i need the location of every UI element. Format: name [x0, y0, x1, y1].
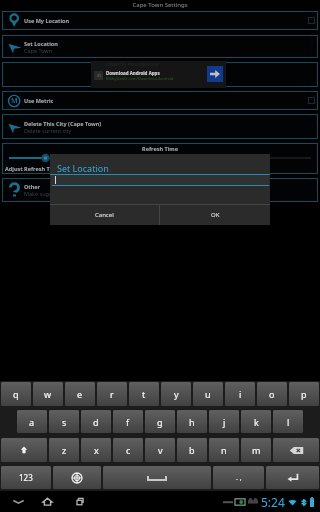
- staticText: n: [221, 444, 227, 456]
- staticText: MobyGenie.com/Download-Android: [106, 76, 174, 81]
- button[interactable]: OK: [160, 205, 270, 225]
- button[interactable]: Recents: [74, 495, 87, 508]
- staticText: M: [11, 96, 18, 106]
- staticText: Refresh Time: [2, 145, 318, 152]
- button[interactable]: Language: [53, 466, 101, 489]
- button[interactable]: h: [177, 410, 207, 433]
- staticText: Delete current city: [24, 127, 72, 134]
- staticText: Cape Town: [24, 47, 53, 54]
- staticText: b: [189, 444, 195, 456]
- button[interactable]: Use My Location: [2, 11, 318, 30]
- staticText: Delete This City (Cape Town): [24, 120, 102, 127]
- staticText: y: [174, 388, 179, 400]
- staticText: t: [142, 388, 146, 400]
- staticText: h: [189, 416, 195, 428]
- staticText: s: [62, 416, 67, 428]
- staticText: a: [29, 416, 35, 428]
- button[interactable]: Set Location: [2, 35, 318, 58]
- button[interactable]: a: [17, 410, 47, 433]
- staticText: z: [62, 444, 67, 456]
- button[interactable]: j: [209, 410, 239, 433]
- button[interactable]: b: [177, 438, 207, 462]
- button[interactable]: k: [241, 410, 271, 433]
- button[interactable]: s: [49, 410, 79, 433]
- staticText: w: [44, 388, 52, 400]
- staticText: Adjust Refresh Time: [5, 165, 60, 172]
- button[interactable]: 123: [1, 466, 51, 489]
- button[interactable]: Delete This City (Cape Town): [2, 114, 318, 139]
- button[interactable]: u: [193, 382, 223, 406]
- button[interactable]: [2, 62, 318, 87]
- button[interactable]: m: [241, 438, 271, 462]
- button[interactable]: d: [81, 410, 111, 433]
- button[interactable]: z: [49, 438, 79, 462]
- button[interactable]: Other: [2, 178, 318, 202]
- staticText: . ,: [236, 473, 242, 483]
- button[interactable]: f: [113, 410, 143, 433]
- button[interactable]: i: [225, 382, 255, 406]
- staticText: q: [13, 388, 19, 400]
- staticText: o: [269, 388, 275, 400]
- staticText: e: [77, 388, 83, 400]
- staticText: i: [239, 388, 242, 400]
- button[interactable]: n: [209, 438, 239, 462]
- staticText: iD: [97, 73, 101, 78]
- staticText: Use My Location: [24, 17, 70, 24]
- staticText: j: [223, 416, 226, 428]
- staticText: p: [301, 388, 307, 400]
- staticText: 5:24: [261, 494, 285, 510]
- button[interactable]: Shift: [1, 438, 47, 462]
- button[interactable]: r: [97, 382, 127, 406]
- staticText: d: [93, 416, 99, 428]
- button[interactable]: x: [81, 438, 111, 462]
- staticText: x: [94, 444, 99, 456]
- staticText: Cancel: [95, 211, 114, 219]
- staticText: r: [110, 388, 114, 400]
- button[interactable]: t: [129, 382, 159, 406]
- staticText: i need my messages now: [106, 61, 159, 67]
- button[interactable]: c: [113, 438, 143, 462]
- staticText: Set Location: [57, 162, 109, 174]
- staticText: 123: [19, 472, 33, 483]
- button[interactable]: w: [33, 382, 63, 406]
- button[interactable]: y: [161, 382, 191, 406]
- button[interactable]: Refresh Time: [2, 143, 318, 174]
- button[interactable]: Cancel: [50, 205, 159, 225]
- button[interactable]: g: [145, 410, 175, 433]
- button[interactable]: e: [65, 382, 95, 406]
- staticText: Cape Town Settings: [0, 1, 320, 9]
- staticText: Use Metric: [24, 97, 54, 104]
- button[interactable]: i need my messages now: [91, 61, 226, 88]
- staticText: v: [158, 444, 163, 456]
- button[interactable]: M: [2, 91, 318, 110]
- button[interactable]: v: [145, 438, 175, 462]
- staticText: f: [126, 416, 130, 428]
- staticText: OK: [211, 211, 220, 219]
- staticText: m: [252, 444, 261, 456]
- staticText: Download Android Apps: [106, 70, 160, 76]
- staticText: l: [287, 416, 290, 428]
- button[interactable]: q: [1, 382, 31, 406]
- button[interactable]: Backspace: [273, 438, 319, 462]
- button[interactable]: Enter: [266, 466, 319, 489]
- staticText: u: [205, 388, 211, 400]
- button[interactable]: . ,: [213, 466, 264, 489]
- button[interactable]: o: [257, 382, 287, 406]
- staticText: c: [126, 444, 131, 456]
- button[interactable]: Home: [41, 495, 54, 508]
- button[interactable]: Space: [103, 466, 211, 489]
- staticText: Make suggestions: [24, 190, 71, 197]
- staticText: Set Location: [24, 40, 58, 47]
- staticText: g: [157, 416, 163, 428]
- button[interactable]: p: [289, 382, 319, 406]
- button[interactable]: Back: [12, 495, 25, 508]
- button[interactable]: l: [273, 410, 303, 433]
- button[interactable]: Go: [207, 66, 223, 82]
- staticText: Other: [24, 183, 41, 190]
- staticText: k: [254, 416, 259, 428]
